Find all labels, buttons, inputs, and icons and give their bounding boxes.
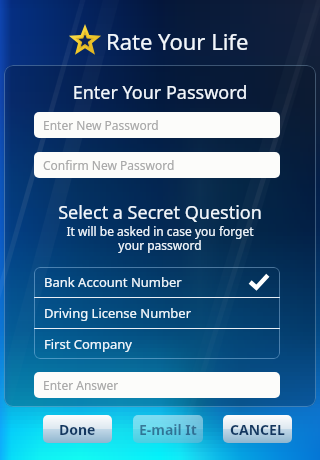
staticText: Enter Your Password <box>0 80 320 105</box>
button[interactable]: First Company <box>34 329 280 359</box>
staticText: CANCEL <box>230 420 285 439</box>
staticText: Select a Secret Question <box>0 200 320 225</box>
button[interactable]: E-mail It <box>133 415 203 443</box>
staticText: E-mail It <box>139 420 197 439</box>
staticText: Enter Answer <box>43 377 119 393</box>
button[interactable]: Enter New Password <box>34 112 280 138</box>
staticText: It will be asked in case you forget your… <box>0 223 320 254</box>
staticText: Rate Your Life <box>106 26 249 56</box>
staticText: Driving License Number <box>44 304 192 322</box>
staticText: Confirm New Password <box>43 157 175 173</box>
staticText: Done <box>59 420 96 439</box>
button[interactable]: Confirm New Password <box>34 152 280 178</box>
staticText: Enter New Password <box>43 117 159 133</box>
button[interactable]: Done <box>43 415 112 443</box>
button[interactable]: Bank Account Number <box>34 267 280 297</box>
staticText: Bank Account Number <box>44 273 182 291</box>
button[interactable]: CANCEL <box>223 415 292 443</box>
staticText: First Company <box>44 335 132 353</box>
button[interactable]: Enter Answer <box>34 372 280 398</box>
button[interactable]: Driving License Number <box>34 298 280 328</box>
